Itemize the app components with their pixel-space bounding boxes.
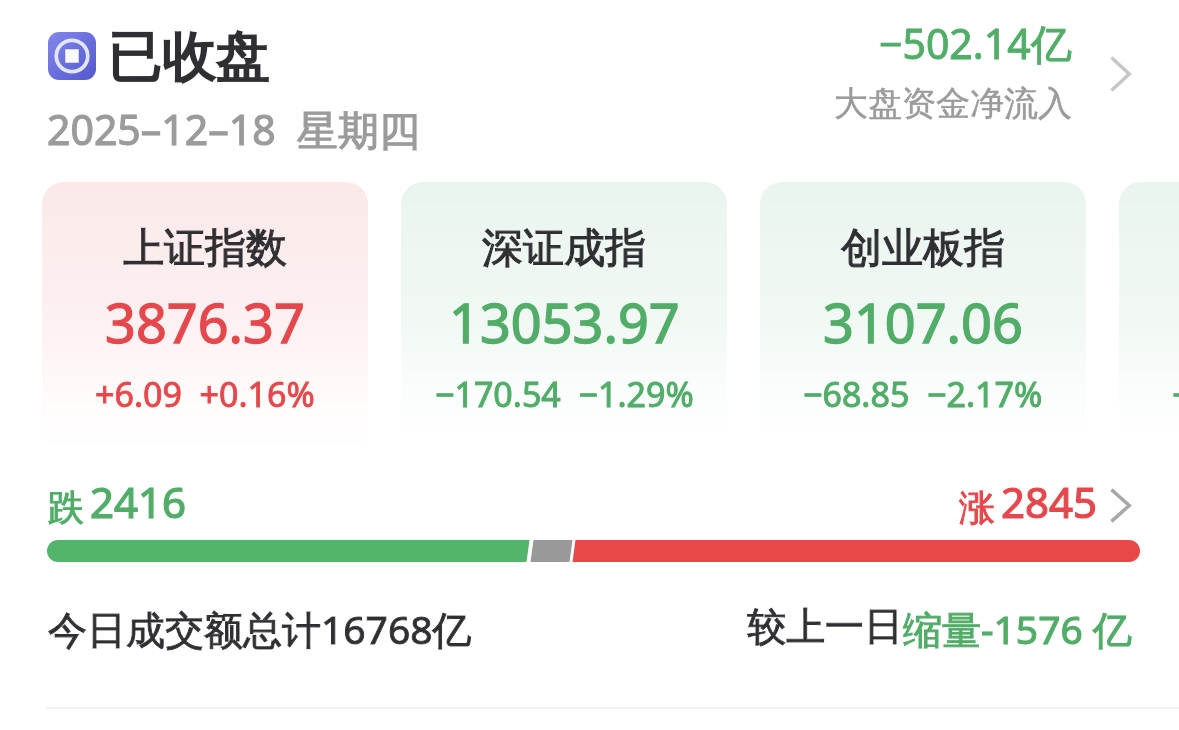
staticText: 较上一日: [747, 602, 903, 651]
staticText: 跌: [48, 485, 84, 530]
staticText: −5.31 −0.45%: [1172, 371, 1179, 417]
staticText: 2845: [1001, 473, 1098, 530]
staticText: 13053.97: [449, 285, 680, 359]
button[interactable]: −502.14亿: [800, 10, 1140, 125]
button[interactable]: 深证成指: [401, 182, 727, 451]
button[interactable]: 创业板指: [760, 182, 1086, 451]
staticText: 2416: [90, 473, 187, 530]
staticText: 上证指数: [123, 223, 287, 275]
button[interactable]: [44, 20, 434, 155]
staticText: 较上一日: [747, 602, 903, 651]
button[interactable]: Up down details: [1111, 489, 1131, 522]
staticText: 大盘资金净流入: [834, 82, 1072, 125]
button[interactable]: 较上一日: [747, 598, 1132, 659]
staticText: −502.14亿: [879, 15, 1072, 71]
staticText: +6.09 +0.16%: [95, 371, 315, 417]
staticText: 3876.37: [105, 285, 305, 359]
button[interactable]: Market closed: [48, 32, 96, 80]
staticText: 跌: [48, 485, 84, 530]
staticText: 涨: [959, 485, 995, 530]
staticText: 2025–12–18 星期四: [47, 101, 420, 157]
staticText: 涨: [959, 485, 995, 530]
staticText: 缩量-1576 亿: [903, 602, 1132, 655]
staticText: −502.14亿: [879, 15, 1072, 71]
button[interactable]: 科创50: [1119, 182, 1179, 451]
staticText: 缩量-1576 亿: [903, 602, 1132, 655]
staticText: 3876.37: [105, 285, 305, 359]
staticText: 今日成交额总计16768亿: [48, 602, 472, 655]
staticText: −170.54 −1.29%: [435, 371, 694, 417]
staticText: 3107.06: [823, 285, 1023, 359]
staticText: 今日成交额总计16768亿: [48, 602, 472, 655]
staticText: 2416: [90, 473, 187, 530]
button[interactable]: Capital flow details: [1111, 57, 1131, 91]
staticText: 大盘资金净流入: [834, 82, 1072, 125]
staticText: 2025–12–18 星期四: [47, 101, 420, 157]
staticText: 创业板指: [841, 223, 1005, 275]
staticText: −68.85 −2.17%: [803, 371, 1043, 417]
button[interactable]: 上证指数: [42, 182, 368, 451]
button[interactable]: 跌: [48, 473, 187, 530]
staticText: 13053.97: [449, 285, 680, 359]
staticText: 3107.06: [823, 285, 1023, 359]
staticText: 上证指数: [123, 223, 287, 275]
staticText: −5.31 −0.45%: [1172, 371, 1179, 417]
staticText: 2845: [1001, 473, 1098, 530]
staticText: 创业板指: [841, 223, 1005, 275]
staticText: 深证成指: [482, 223, 646, 275]
staticText: 已收盘: [107, 24, 269, 92]
staticText: +6.09 +0.16%: [95, 371, 315, 417]
staticText: −170.54 −1.29%: [435, 371, 694, 417]
button[interactable]: 涨: [959, 473, 1098, 530]
button[interactable]: 今日成交额总计16768亿: [48, 598, 472, 659]
staticText: −68.85 −2.17%: [803, 371, 1043, 417]
staticText: 深证成指: [482, 223, 646, 275]
